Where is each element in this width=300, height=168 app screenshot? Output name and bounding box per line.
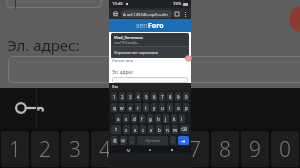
staticText: 0м: [112, 84, 118, 90]
button[interactable]: p: [183, 103, 189, 112]
button[interactable]: a: [115, 114, 121, 123]
button[interactable]: 5: [121, 131, 149, 167]
staticText: 4: [137, 94, 140, 100]
button[interactable]: y: [151, 103, 157, 112]
button[interactable]: 1: [1, 131, 29, 167]
staticText: 9: [177, 94, 180, 100]
button[interactable]: .: [170, 136, 176, 145]
staticText: n: [166, 127, 169, 133]
button[interactable]: 4: [91, 131, 119, 167]
button[interactable]: Space: [137, 136, 168, 145]
button[interactable]: f: [139, 114, 145, 123]
staticText: a: [117, 116, 120, 122]
button[interactable]: 7: [159, 92, 165, 101]
button[interactable]: Tabs: [174, 11, 180, 17]
button[interactable]: k: [171, 114, 177, 123]
staticText: r: [137, 105, 139, 111]
staticText: 0: [279, 135, 291, 164]
button[interactable]: 8: [211, 131, 239, 167]
staticText: .: [172, 138, 174, 143]
button[interactable]: 英: [111, 136, 118, 145]
button[interactable]: u: [159, 103, 165, 112]
button[interactable]: 9: [175, 92, 181, 101]
button[interactable]: 0: [183, 92, 189, 101]
button[interactable]: acf.1492dk.vqo5.ru/in: [123, 10, 170, 18]
button[interactable]: x: [132, 125, 138, 134]
staticText: z: [125, 127, 128, 133]
staticText: t: [145, 105, 147, 111]
button[interactable]: Управление паролями: [111, 47, 189, 58]
button[interactable]: Home: [147, 147, 153, 153]
staticText: 1: [113, 94, 116, 100]
button[interactable]: Back: [125, 147, 131, 153]
button[interactable]: 7: [181, 131, 209, 167]
button[interactable]: Enter: [178, 136, 189, 145]
staticText: →: [181, 138, 186, 144]
staticText: 7: [161, 94, 164, 100]
button[interactable]: 0: [271, 131, 299, 167]
staticText: l: [181, 116, 183, 122]
staticText: o: [177, 105, 180, 111]
button[interactable]: ☺: [120, 136, 127, 145]
staticText: 8: [219, 135, 231, 164]
button[interactable]: h: [155, 114, 161, 123]
staticText: k: [173, 116, 176, 122]
staticText: 2: [121, 94, 124, 100]
staticText: Управление паролями: [114, 50, 159, 55]
button[interactable]: e: [127, 103, 133, 112]
staticText: b: [158, 127, 161, 133]
button[interactable]: 1: [111, 92, 117, 101]
button[interactable]: 8: [167, 92, 173, 101]
staticText: j: [165, 116, 167, 122]
button[interactable]: 9: [241, 131, 269, 167]
staticText: g: [149, 116, 152, 122]
button[interactable]: t: [143, 103, 149, 112]
button[interactable]: ⇧: [111, 125, 121, 134]
button[interactable]: n: [164, 125, 170, 134]
staticText: v: [150, 127, 153, 133]
button[interactable]: s: [123, 114, 129, 123]
button[interactable]: q: [111, 103, 117, 112]
staticText: 3: [69, 135, 81, 164]
button[interactable]: Vlad_Semenov: [111, 33, 189, 46]
button[interactable]: [112, 77, 188, 83]
button[interactable]: i: [167, 103, 173, 112]
button[interactable]: o: [175, 103, 181, 112]
button[interactable]: d: [131, 114, 137, 123]
button[interactable]: Home: [112, 10, 119, 17]
button[interactable]: 3: [127, 92, 133, 101]
button[interactable]: m: [172, 125, 178, 134]
staticText: 英: [113, 138, 117, 143]
button[interactable]: [8, 56, 300, 83]
staticText: i: [169, 105, 171, 111]
staticText: Vlad_Semenov: [114, 35, 143, 41]
button[interactable]: v: [148, 125, 154, 134]
button[interactable]: ,: [129, 136, 135, 145]
staticText: Foro: [148, 21, 164, 31]
button[interactable]: 4: [135, 92, 141, 101]
button[interactable]: 6: [151, 92, 157, 101]
button[interactable]: j: [163, 114, 169, 123]
button[interactable]: 3: [61, 131, 89, 167]
button[interactable]: Password: [6, 93, 54, 123]
button[interactable]: r: [135, 103, 141, 112]
button[interactable]: 2: [119, 92, 125, 101]
button[interactable]: c: [140, 125, 146, 134]
button[interactable]: ⌫: [180, 125, 189, 134]
staticText: e: [129, 105, 132, 111]
button[interactable]: w: [119, 103, 125, 112]
button[interactable]: 6: [151, 131, 179, 167]
button[interactable]: b: [156, 125, 162, 134]
button[interactable]: 5: [143, 92, 149, 101]
staticText: 76%: [173, 1, 182, 7]
button[interactable]: z: [123, 125, 130, 134]
button[interactable]: g: [147, 114, 153, 123]
staticText: ,: [131, 138, 133, 143]
button[interactable]: Recents: [169, 147, 175, 153]
staticText: 10:45: [112, 1, 123, 7]
button[interactable]: More options: [182, 11, 188, 17]
staticText: ⇧: [114, 127, 118, 132]
button[interactable]: l: [179, 114, 185, 123]
staticText: 5: [129, 135, 141, 164]
button[interactable]: 2: [31, 131, 59, 167]
